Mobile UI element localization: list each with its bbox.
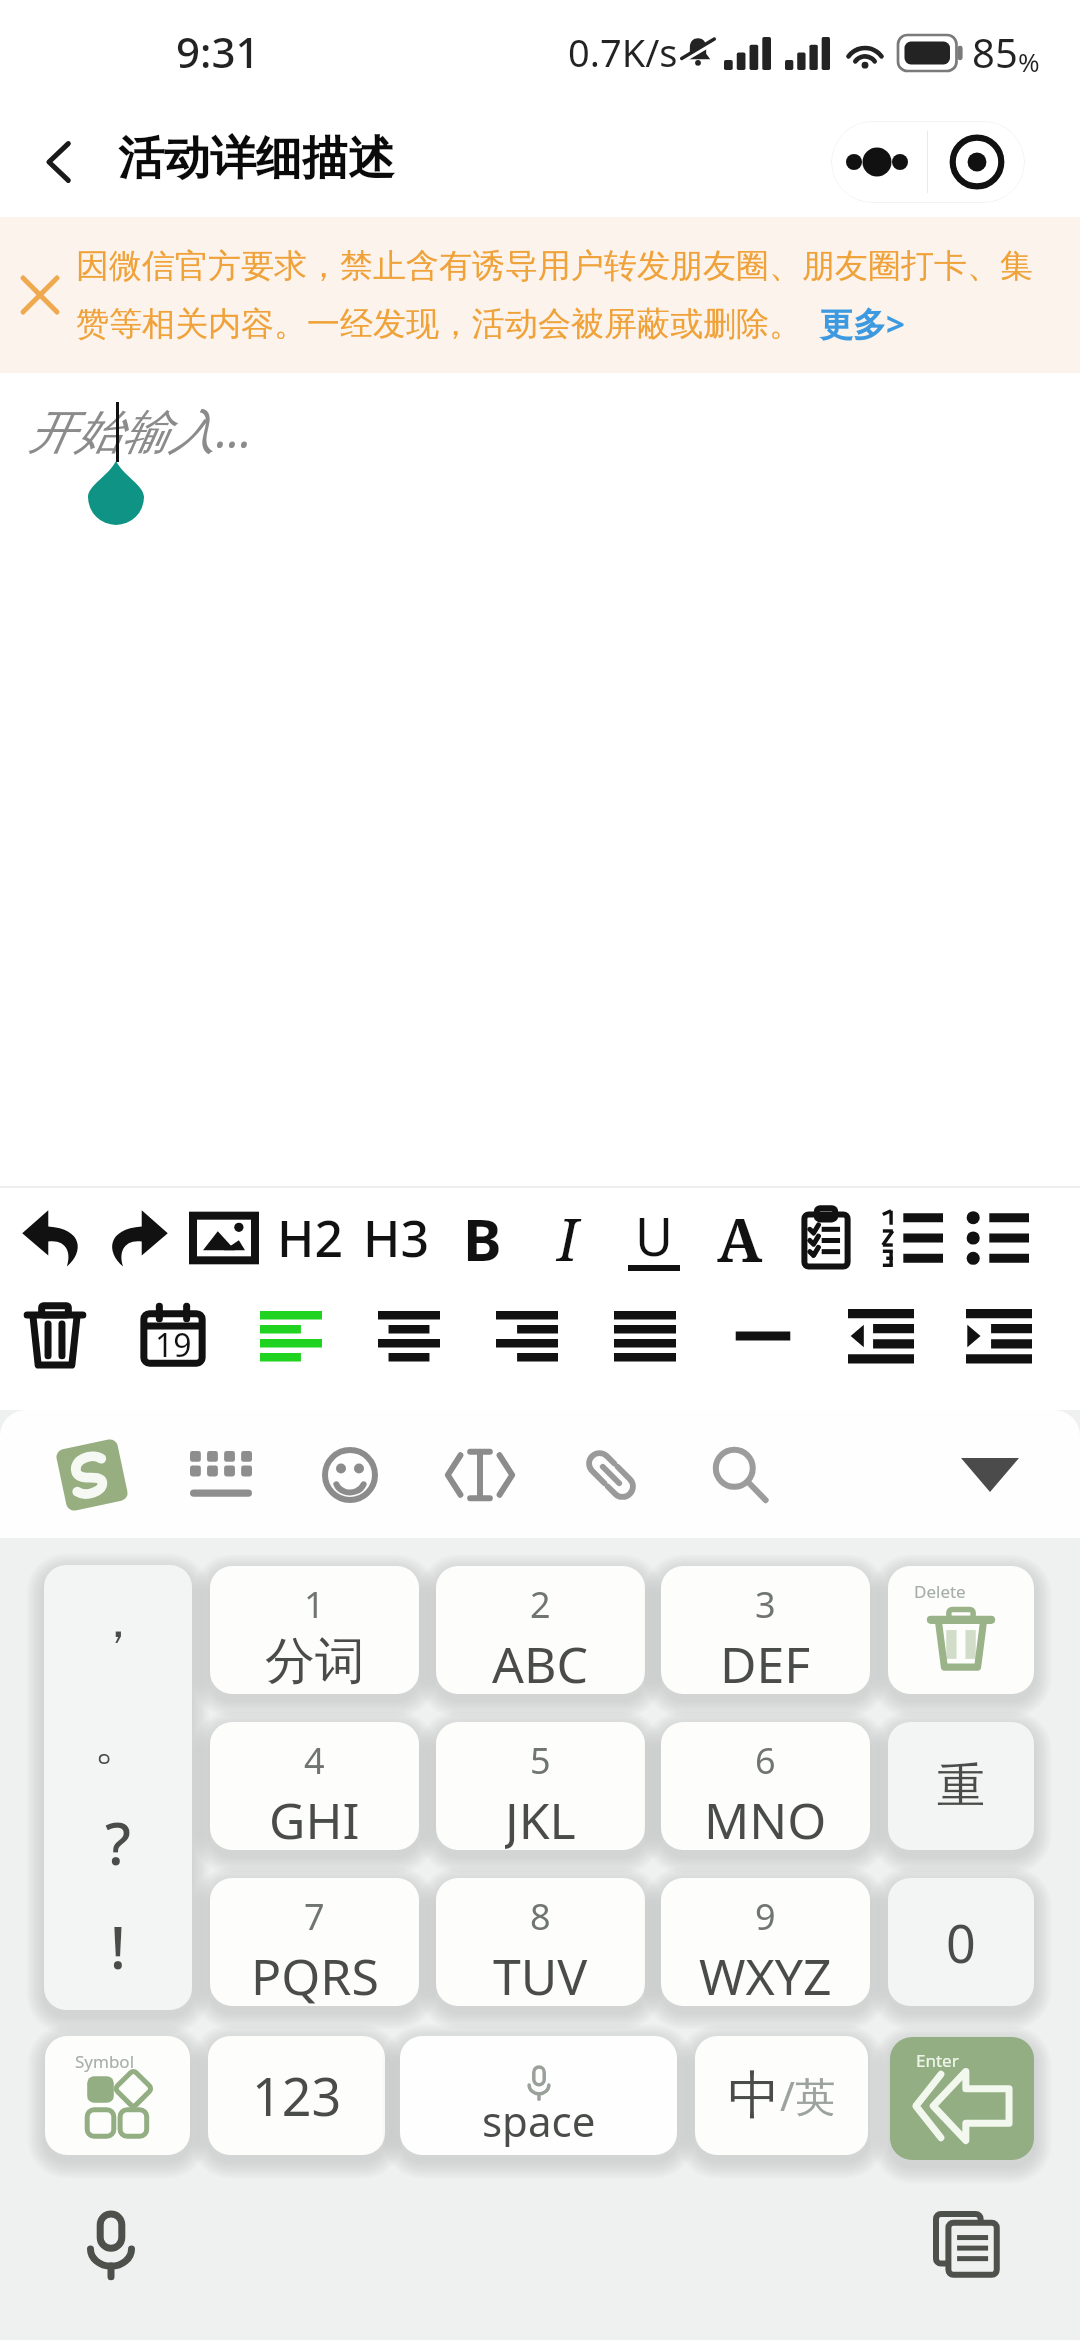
button[interactable]: Checklist [786,1198,866,1278]
staticText: DEF [720,1630,811,1694]
button[interactable]: 3 DEF [661,1566,870,1694]
staticText: 赞等相关内容。一经发现，活动会被屏蔽或删除。 [76,303,802,345]
staticText: 1 [304,1580,325,1629]
staticText: 8 [530,1892,551,1941]
staticText: 6 [755,1736,776,1785]
staticText: ABC [492,1630,589,1694]
staticText: ? [105,1803,131,1882]
button[interactable]: Clipboard tool [566,1430,656,1520]
button[interactable]: 9 WXYZ [661,1878,870,2006]
button[interactable]: Bulleted list [958,1198,1038,1278]
button[interactable]: 中/英 [695,2036,868,2155]
staticText: MNO [704,1786,827,1850]
staticText: ! [110,1907,126,1986]
button[interactable]: Font [700,1198,780,1278]
button[interactable]: Delete [888,1566,1034,1694]
button[interactable]: Heading 2 [270,1198,350,1278]
button[interactable]: 7 PQRS [210,1878,419,2006]
staticText: Enter [916,2049,959,2072]
staticText: WXYZ [699,1942,832,2006]
staticText: 3 [755,1580,776,1629]
staticText: 因微信官方要求，禁止含有诱导用户转发朋友圈、朋友圈打卡、集 [76,245,1033,287]
button[interactable]: Voice input [66,2200,156,2290]
staticText: 19 [155,1323,192,1367]
button[interactable]: 123 [208,2036,385,2155]
button[interactable]: Align center [367,1294,451,1378]
staticText: 活动详细描述 [118,130,394,188]
button[interactable]: Symbol [45,2036,190,2155]
button[interactable]: Numbered list [872,1198,952,1278]
staticText: PQRS [251,1942,379,2006]
staticText: GHI [269,1786,360,1850]
button[interactable]: 2 ABC [436,1566,645,1694]
staticText: 中 [728,2063,780,2129]
staticText: ， [94,1591,142,1651]
button[interactable]: Insert image [184,1198,264,1278]
staticText: 0.7K/s [568,26,678,78]
button[interactable]: Undo [12,1198,92,1278]
staticText: 重 [937,1756,985,1816]
button[interactable]: 1 分词 [210,1566,419,1694]
staticText: 7 [304,1892,325,1941]
staticText: Delete [914,1580,966,1603]
staticText: 开始输入... [28,398,253,462]
button[interactable]: 4 GHI [210,1722,419,1850]
button[interactable]: Align left [249,1294,333,1378]
button[interactable]: Delete [13,1294,97,1378]
button[interactable]: Punctuation [44,1565,192,2010]
staticText: U [635,1200,674,1271]
staticText: 0 [946,1907,976,1978]
staticText: 。 [94,1713,142,1773]
button[interactable]: Indent [957,1294,1041,1378]
staticText: 分词 [265,1630,365,1693]
staticText: 5 [530,1736,551,1785]
button[interactable]: 0 [888,1878,1034,2006]
staticText: 4 [304,1736,325,1785]
button[interactable]: Emoji [305,1430,395,1520]
button[interactable]: Italic [528,1198,608,1278]
staticText: 85 [972,25,1018,79]
button[interactable]: 5 JKL [436,1722,645,1850]
staticText: space [482,2092,596,2149]
staticText: A [717,1198,763,1278]
button[interactable]: Justify [603,1294,687,1378]
staticText: Symbol [75,2050,135,2073]
staticText: B [463,1199,502,1278]
button[interactable]: Move cursor [435,1430,525,1520]
staticText: /英 [780,2068,835,2123]
button[interactable]: Bold [442,1198,522,1278]
button[interactable]: Back [20,122,100,202]
staticText: 2 [530,1580,551,1629]
button[interactable]: Keyboard [176,1430,266,1520]
staticText: JKL [505,1786,576,1850]
button[interactable]: space [400,2036,677,2155]
staticText: % [1018,44,1040,79]
staticText: H3 [363,1204,429,1272]
button[interactable]: Search [696,1430,786,1520]
button[interactable]: 更多> [820,301,905,346]
button[interactable]: Enter [890,2037,1034,2160]
button[interactable]: 8 TUV [436,1878,645,2006]
button[interactable]: More [831,121,928,203]
button[interactable]: Sogou input [47,1430,137,1520]
button[interactable]: Close mini program [928,121,1025,203]
staticText: TUV [493,1942,588,2006]
button[interactable]: Outdent [839,1294,923,1378]
button[interactable]: 6 MNO [661,1722,870,1850]
button[interactable]: Clipboard [922,2200,1012,2290]
button[interactable]: Repeat [888,1722,1034,1850]
button[interactable]: Dismiss [8,263,72,327]
button[interactable]: Redo [98,1198,178,1278]
staticText: 9 [755,1892,776,1941]
button[interactable]: Heading 3 [356,1198,436,1278]
staticText: H2 [277,1204,343,1272]
staticText: 123 [252,2060,342,2131]
staticText: 9:31 [176,23,260,80]
staticText: I [557,1199,579,1278]
button[interactable]: Divider [721,1294,805,1378]
button[interactable]: Hide keyboard [945,1430,1035,1520]
button[interactable]: Date [131,1294,215,1378]
button[interactable]: Align right [485,1294,569,1378]
button[interactable]: Underline [614,1198,694,1278]
